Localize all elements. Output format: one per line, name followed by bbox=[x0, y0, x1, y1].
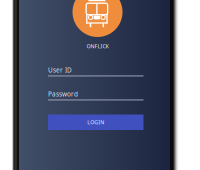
staticText: LOGIN bbox=[87, 119, 104, 126]
staticText: ONFLICK bbox=[86, 43, 108, 50]
staticText: Password bbox=[48, 90, 78, 98]
button[interactable]: Password bbox=[48, 89, 143, 103]
button[interactable]: User ID bbox=[48, 65, 143, 79]
button[interactable]: LOGIN bbox=[48, 114, 143, 130]
staticText: User ID bbox=[48, 66, 72, 74]
